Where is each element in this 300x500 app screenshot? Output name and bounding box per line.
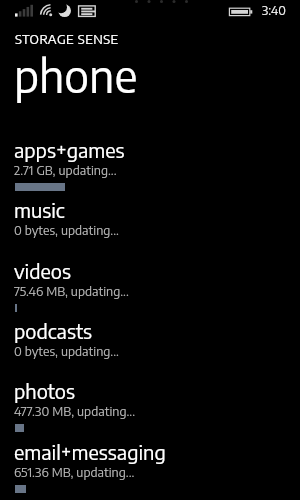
button[interactable]: music xyxy=(0,197,300,257)
staticText: STORAGE SENSE xyxy=(15,31,119,47)
staticText: 651.36 MB, updating... xyxy=(14,464,135,480)
button[interactable]: podcasts xyxy=(0,318,300,378)
staticText: apps+games xyxy=(14,137,125,162)
staticText: videos xyxy=(14,258,71,283)
staticText: 75.46 MB, updating... xyxy=(14,283,129,299)
staticText: photos xyxy=(14,378,75,403)
button[interactable]: email+messaging xyxy=(0,439,300,499)
staticText: 3:40 xyxy=(262,2,286,17)
staticText: 477.30 MB, updating... xyxy=(14,403,136,419)
staticText: podcasts xyxy=(14,318,93,343)
staticText: email+messaging xyxy=(14,439,166,464)
button[interactable]: apps+games xyxy=(0,137,300,197)
staticText: 0 bytes, updating... xyxy=(14,222,119,238)
staticText: music xyxy=(14,197,65,222)
staticText: phone xyxy=(14,47,138,103)
staticText: 0 bytes, updating... xyxy=(14,343,119,359)
button[interactable]: videos xyxy=(0,258,300,318)
button[interactable]: photos xyxy=(0,378,300,438)
staticText: 2.71 GB, updating... xyxy=(14,162,117,178)
